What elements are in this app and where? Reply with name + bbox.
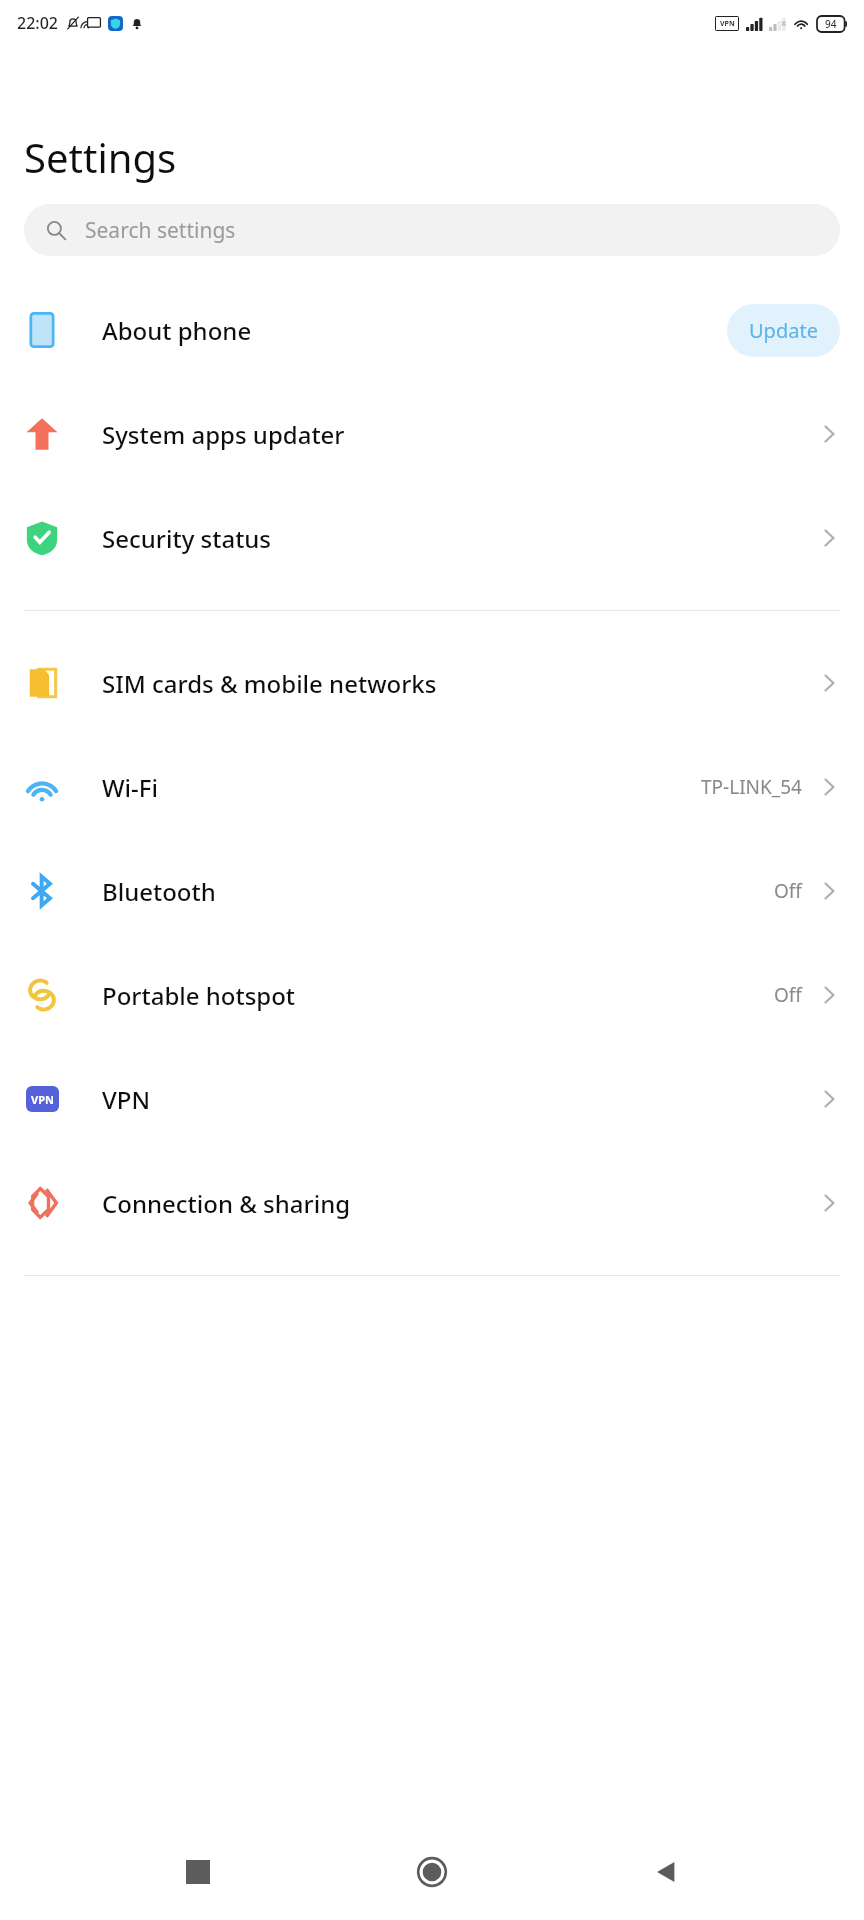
button[interactable]: Home — [396, 1836, 468, 1908]
staticText: TP-LINK_54 — [701, 774, 802, 800]
staticText: Portable hotspot — [102, 979, 774, 1012]
button[interactable]: Portable hotspot — [0, 943, 864, 1047]
button[interactable]: System apps updater — [0, 382, 864, 486]
staticText: Off — [774, 982, 802, 1008]
button[interactable]: SIM cards & mobile networks — [0, 631, 864, 735]
staticText: SIM cards & mobile networks — [102, 667, 818, 700]
button[interactable]: Connection & sharing — [0, 1151, 864, 1255]
staticText: About phone — [102, 314, 727, 347]
button[interactable]: VPN — [0, 1047, 864, 1151]
button[interactable]: About phone — [0, 278, 864, 382]
staticText: 22:02 — [17, 12, 58, 34]
staticText: Update — [749, 317, 818, 344]
staticText: VPN — [102, 1083, 818, 1116]
staticText: Connection & sharing — [102, 1187, 818, 1220]
button[interactable]: Wi-Fi — [0, 735, 864, 839]
staticText: Settings — [24, 130, 177, 184]
staticText: System apps updater — [102, 418, 818, 451]
staticText: 94 — [825, 17, 837, 31]
button[interactable]: Search settings — [24, 204, 840, 256]
button[interactable]: Recent apps — [162, 1836, 234, 1908]
button[interactable]: Security status — [0, 486, 864, 590]
staticText: VPN — [31, 1092, 54, 1107]
staticText: Search settings — [85, 216, 236, 245]
staticText: Wi-Fi — [102, 771, 701, 804]
staticText: Security status — [102, 522, 818, 555]
button[interactable]: Update — [727, 304, 840, 357]
staticText: Bluetooth — [102, 875, 774, 908]
staticText: Off — [774, 878, 802, 904]
button[interactable]: Back — [630, 1836, 702, 1908]
staticText: VPN — [720, 19, 735, 29]
button[interactable]: Bluetooth — [0, 839, 864, 943]
